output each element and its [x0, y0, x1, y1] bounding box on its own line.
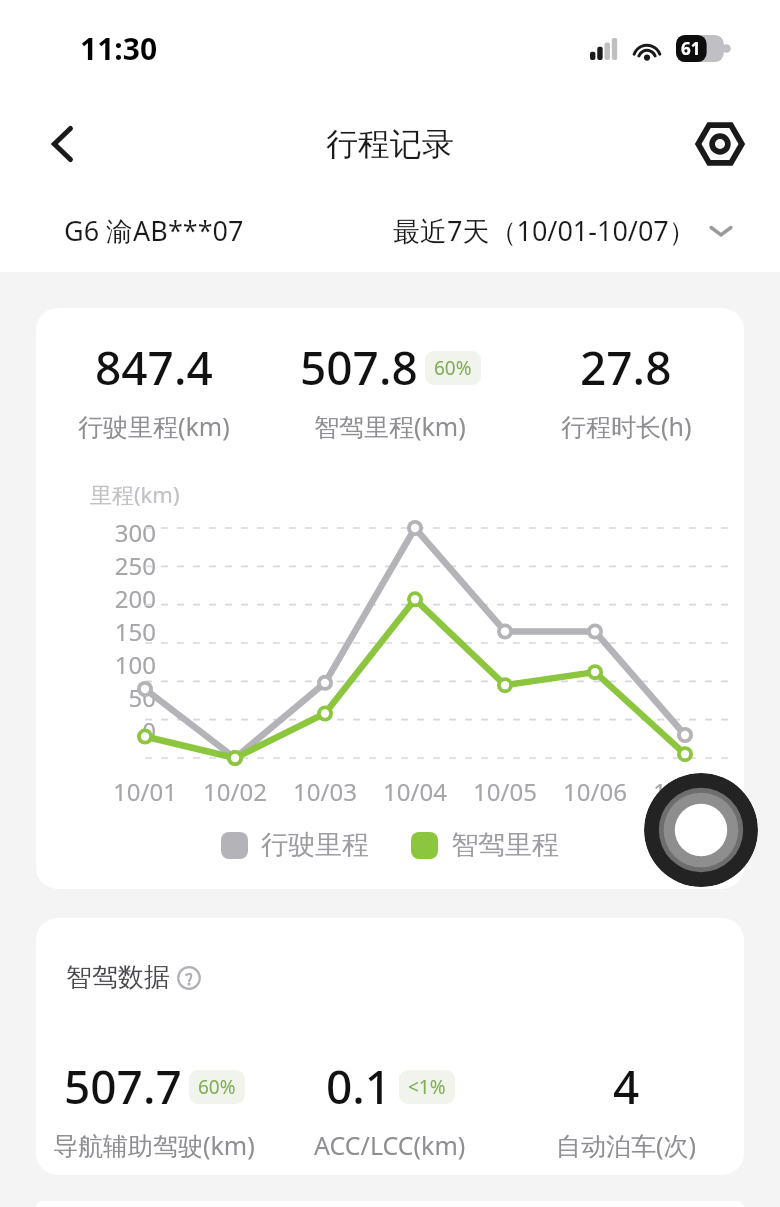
button[interactable]: Tire data: [644, 773, 758, 887]
staticText: 11:30: [80, 28, 158, 69]
staticText: 智驾数据: [66, 961, 170, 994]
staticText: 0: [142, 714, 156, 747]
staticText: 507.7: [64, 1055, 182, 1118]
staticText: 10/01: [107, 775, 183, 808]
staticText: 10/06: [557, 775, 633, 808]
button[interactable]: 智驾数据: [66, 961, 201, 994]
staticText: 507.8: [300, 336, 418, 399]
staticText: ACC/LCC(km): [314, 1128, 466, 1162]
staticText: 导航辅助驾驶(km): [53, 1128, 255, 1162]
staticText: 60%: [434, 355, 472, 381]
staticText: <1%: [408, 1074, 446, 1100]
staticText: 200: [114, 582, 156, 615]
staticText: 行驶里程(km): [78, 409, 230, 443]
staticText: 行程时长(h): [561, 409, 692, 443]
staticText: 847.4: [95, 336, 213, 399]
button[interactable]: Settings: [694, 118, 746, 170]
staticText: 27.8: [580, 336, 672, 399]
button[interactable]: Back: [32, 113, 94, 175]
staticText: 10/05: [467, 775, 543, 808]
staticText: 10/03: [287, 775, 363, 808]
staticText: 61: [681, 37, 701, 60]
staticText: 自动泊车(次): [556, 1128, 697, 1162]
staticText: 里程(km): [90, 479, 180, 509]
button[interactable]: G6 渝AB***07: [64, 212, 244, 249]
staticText: 10/07: [647, 775, 723, 808]
staticText: 最近7天（10/01-10/07）: [393, 212, 696, 249]
staticText: 10/04: [377, 775, 453, 808]
staticText: 50: [128, 681, 156, 714]
staticText: 10/02: [197, 775, 273, 808]
staticText: 0.1: [326, 1055, 392, 1118]
staticText: 300: [114, 516, 156, 549]
staticText: 4: [613, 1055, 640, 1118]
staticText: 行程记录: [326, 124, 454, 164]
staticText: 行驶里程: [261, 828, 369, 862]
staticText: 智驾里程: [451, 828, 559, 862]
staticText: 智驾里程(km): [314, 409, 466, 443]
staticText: 100: [114, 648, 156, 681]
button[interactable]: 最近7天（10/01-10/07）: [393, 212, 734, 249]
staticText: 150: [114, 615, 156, 648]
staticText: 60%: [198, 1074, 236, 1100]
staticText: 250: [114, 549, 156, 582]
